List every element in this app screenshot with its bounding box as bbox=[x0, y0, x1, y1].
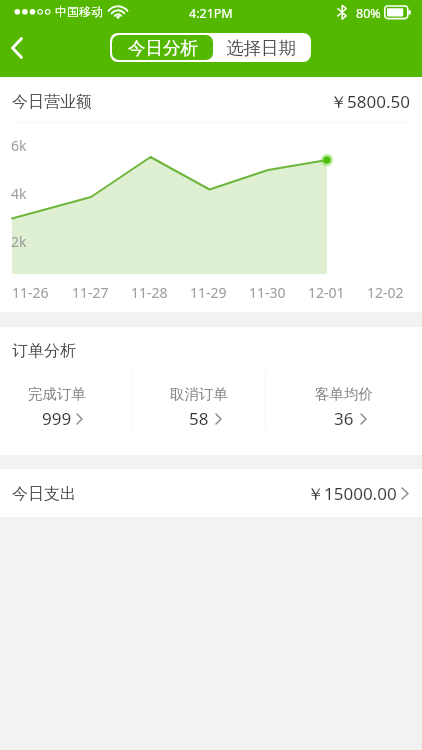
staticText: 订单分析 bbox=[12, 341, 76, 361]
button[interactable]: Back bbox=[0, 23, 38, 73]
staticText: 80% bbox=[356, 5, 381, 22]
button[interactable]: 今日分析 bbox=[112, 35, 213, 60]
staticText: 完成订单 bbox=[28, 385, 86, 403]
staticText: 客单均价 bbox=[315, 385, 373, 403]
staticText: 2k bbox=[11, 232, 27, 251]
staticText: 选择日期 bbox=[226, 37, 296, 59]
staticText: 11-30 bbox=[249, 283, 286, 302]
staticText: 12-01 bbox=[308, 283, 345, 302]
staticText: 今日营业额 bbox=[12, 92, 92, 112]
staticText: 中国移动 bbox=[55, 4, 103, 19]
button[interactable]: 取消订单 bbox=[133, 371, 265, 455]
staticText: 58 bbox=[189, 407, 209, 430]
staticText: 4k bbox=[11, 184, 27, 203]
staticText: 999 bbox=[42, 407, 72, 430]
staticText: 36 bbox=[334, 407, 354, 430]
staticText: 今日分析 bbox=[128, 37, 198, 59]
staticText: 11-29 bbox=[190, 283, 227, 302]
staticText: 12-02 bbox=[367, 283, 404, 302]
staticText: 取消订单 bbox=[170, 385, 228, 403]
button[interactable]: 选择日期 bbox=[215, 33, 311, 62]
staticText: ￥15000.00 bbox=[307, 482, 397, 505]
staticText: 今日支出 bbox=[12, 484, 76, 504]
staticText: 11-27 bbox=[72, 283, 109, 302]
staticText: 11-26 bbox=[12, 283, 49, 302]
button[interactable]: 客单均价 bbox=[266, 371, 422, 455]
button[interactable]: 今日支出 bbox=[0, 469, 422, 517]
button[interactable]: 完成订单 bbox=[0, 371, 123, 455]
staticText: 6k bbox=[11, 136, 27, 155]
staticText: ￥5800.50 bbox=[330, 90, 410, 113]
staticText: 11-28 bbox=[131, 283, 168, 302]
staticText: 4:21PM bbox=[189, 5, 233, 22]
